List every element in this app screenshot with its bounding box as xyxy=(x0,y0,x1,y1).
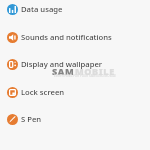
button[interactable]: Lock screen xyxy=(0,78,150,106)
staticText: MOBILE xyxy=(75,65,115,77)
staticText: Data usage xyxy=(21,4,63,14)
staticText: Lock screen xyxy=(21,87,65,97)
button[interactable]: Sounds and notifications xyxy=(0,23,150,51)
button[interactable]: S Pen xyxy=(0,105,150,133)
staticText: S Pen xyxy=(21,114,42,124)
staticText: EVERYTHING FOR YOUR SAMSUNG MOBILE xyxy=(54,74,117,78)
staticText: SAM xyxy=(52,65,75,77)
staticText: Display and wallpaper xyxy=(21,59,103,69)
staticText: Sounds and notifications xyxy=(21,32,112,42)
button[interactable]: Display and wallpaper xyxy=(0,50,150,78)
button[interactable]: Data usage xyxy=(0,0,150,23)
